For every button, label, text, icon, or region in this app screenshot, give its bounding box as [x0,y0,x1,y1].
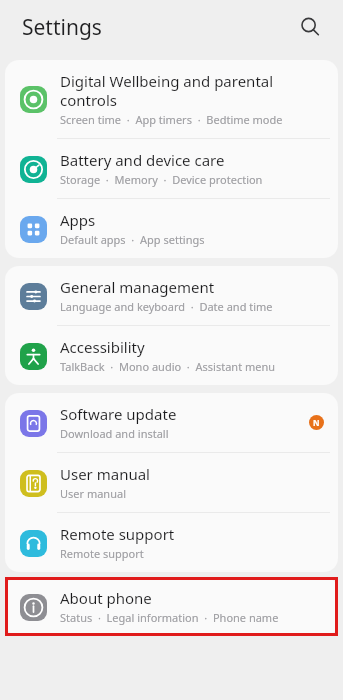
staticText: Software update [60,404,177,424]
staticText: Settings [22,13,102,42]
button[interactable]: General management [5,266,338,325]
staticText: Accessibility [60,337,145,357]
staticText: About phone [60,588,152,608]
staticText: User manual [60,486,126,501]
staticText: Default apps · App settings [60,232,205,247]
button[interactable]: Software update [5,393,338,452]
staticText: Language and keyboard · Date and time [60,299,273,314]
staticText: Battery and device care [60,150,225,170]
staticText: Remote support [60,524,175,544]
button[interactable]: User manual [5,453,338,512]
staticText: General management [60,277,215,297]
button[interactable]: Accessibility [5,326,338,385]
staticText: TalkBack · Mono audio · Assistant menu [60,359,276,374]
button[interactable]: Search [293,10,327,44]
staticText: Screen time · App timers · Bedtime mode [60,112,283,127]
staticText: User manual [60,464,150,484]
staticText: Download and install [60,426,169,441]
button[interactable]: Battery and device care [5,139,338,198]
staticText: Apps [60,210,96,230]
button[interactable]: Apps [5,199,338,258]
button[interactable]: Digital Wellbeing and parental controls [5,60,338,138]
button[interactable]: About phone [5,577,338,636]
staticText: Status · Legal information · Phone name [60,610,279,625]
staticText: Digital Wellbeing and parental controls [60,71,324,110]
button[interactable]: Remote support [5,513,338,572]
staticText: Remote support [60,546,144,561]
staticText: N [313,417,320,428]
staticText: Storage · Memory · Device protection [60,172,263,187]
